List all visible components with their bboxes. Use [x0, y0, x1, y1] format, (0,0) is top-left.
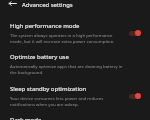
button[interactable]: High performance mode: [0, 22, 150, 53]
staticText: Dark mode: [10, 116, 42, 120]
staticText: Optimize battery use: [10, 53, 69, 61]
staticText: Your device consumes less power and redu…: [10, 95, 126, 107]
button[interactable]: Dark mode: [0, 116, 150, 120]
staticText: High performance mode: [10, 22, 80, 30]
button[interactable]: Toggle Sleep standby optimization: [129, 93, 140, 99]
button[interactable]: Optimize battery use: [0, 53, 150, 84]
staticText: Automatically optimize apps that are dra…: [10, 63, 126, 75]
staticText: The system always operates in a high per…: [10, 32, 126, 44]
staticText: Sleep standby optimization: [10, 85, 87, 93]
staticText: Advanced settings: [22, 1, 73, 9]
button[interactable]: Sleep standby optimization: [0, 85, 150, 116]
button[interactable]: Toggle High performance mode: [129, 30, 140, 36]
button[interactable]: Back: [6, 0, 19, 8]
